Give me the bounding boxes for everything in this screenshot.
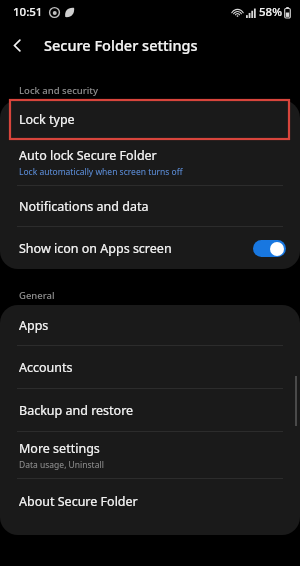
staticText: Show icon on Apps screen xyxy=(19,240,253,257)
button[interactable]: More settings xyxy=(0,432,300,478)
button[interactable]: Notifications and data xyxy=(0,186,300,226)
button[interactable]: Accounts xyxy=(0,346,300,388)
button[interactable]: Apps xyxy=(0,305,300,345)
button[interactable]: Back xyxy=(0,28,34,62)
button[interactable]: Backup and restore xyxy=(0,389,300,431)
button[interactable]: Show icon on Apps screen xyxy=(0,227,300,269)
staticText: Accounts xyxy=(19,359,73,376)
staticText: 10:51 xyxy=(13,4,43,20)
staticText: Notifications and data xyxy=(19,198,149,215)
staticText: Backup and restore xyxy=(19,402,134,419)
button[interactable]: About Secure Folder xyxy=(0,479,300,523)
staticText: Lock automatically when screen turns off xyxy=(19,166,183,178)
staticText: Lock and security xyxy=(19,84,99,97)
button[interactable]: Lock type xyxy=(0,100,300,138)
staticText: 58% xyxy=(259,4,282,20)
staticText: General xyxy=(19,289,55,302)
staticText: Data usage, Uninstall xyxy=(19,459,104,471)
staticText: More settings xyxy=(19,440,100,457)
staticText: About Secure Folder xyxy=(19,493,138,510)
staticText: Auto lock Secure Folder xyxy=(19,147,157,164)
staticText: Secure Folder settings xyxy=(44,35,198,55)
button[interactable]: Auto lock Secure Folder xyxy=(0,139,300,185)
staticText: Lock type xyxy=(19,111,75,128)
staticText: Apps xyxy=(19,317,49,334)
